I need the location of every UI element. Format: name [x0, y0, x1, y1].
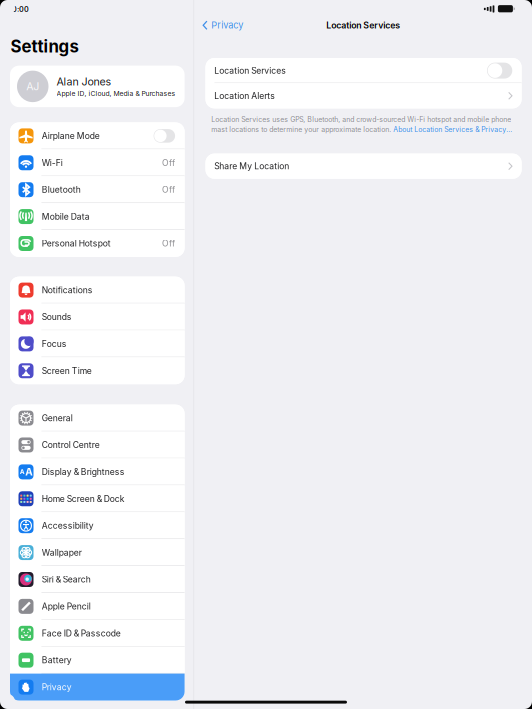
staticText: Bluetooth — [42, 184, 81, 195]
button[interactable]: Accessibility — [10, 512, 185, 539]
staticText: A — [25, 466, 32, 478]
button[interactable]: Screen Time — [10, 357, 185, 384]
staticText: Privacy — [42, 682, 72, 692]
button[interactable]: Focus — [10, 330, 185, 357]
button[interactable]: Wi-Fi — [10, 149, 185, 176]
staticText: Off — [162, 184, 175, 195]
staticText: A — [20, 468, 25, 476]
staticText: Wallpaper — [42, 547, 82, 558]
staticText: Sounds — [42, 312, 72, 322]
button[interactable]: Wallpaper — [10, 539, 185, 566]
staticText: Share My Location — [214, 161, 289, 171]
button[interactable]: Airplane Mode — [10, 122, 185, 149]
button[interactable]: AJ — [10, 66, 185, 107]
staticText: Focus — [42, 339, 67, 349]
staticText: Apple ID, iCloud, Media & Purchases — [56, 89, 175, 98]
button[interactable]: Location Alerts — [205, 83, 522, 108]
button[interactable]: Mobile Data — [10, 203, 185, 230]
staticText: AJ — [26, 80, 39, 93]
button[interactable]: Personal Hotspot — [10, 230, 185, 257]
staticText: Screen Time — [42, 366, 92, 376]
staticText: Privacy — [211, 20, 243, 31]
staticText: Location Alerts — [214, 91, 275, 101]
staticText: Notifications — [42, 285, 93, 295]
staticText: General — [42, 413, 73, 423]
staticText: Alan Jones — [56, 75, 111, 88]
staticText: Control Centre — [42, 440, 100, 450]
staticText: Home Screen & Dock — [42, 494, 125, 504]
button[interactable]: Home Screen & Dock — [10, 485, 185, 512]
button[interactable]: Apple Pencil — [10, 593, 185, 620]
staticText: Location Services — [326, 20, 400, 30]
button[interactable]: Bluetooth — [10, 176, 185, 203]
staticText: Display & Brightness — [42, 467, 125, 477]
button[interactable]: Sounds — [10, 303, 185, 330]
staticText: Settings — [11, 36, 79, 57]
staticText: Apple Pencil — [42, 601, 91, 611]
staticText: Siri & Search — [42, 574, 91, 585]
staticText: mast locations to determine your approxi… — [211, 125, 393, 134]
button[interactable]: A — [10, 458, 185, 485]
staticText: Mobile Data — [42, 211, 90, 222]
staticText: Off — [162, 238, 175, 249]
button[interactable]: Privacy — [10, 674, 185, 700]
staticText: Accessibility — [42, 520, 94, 531]
staticText: 10:00 — [9, 5, 29, 14]
button[interactable]: Control Centre — [10, 431, 185, 458]
staticText: Location Services — [214, 65, 286, 76]
staticText: Off — [162, 158, 175, 168]
staticText: Airplane Mode — [42, 131, 100, 141]
button[interactable]: Share My Location — [205, 154, 522, 179]
staticText: Battery — [42, 655, 72, 665]
staticText: Wi-Fi — [42, 158, 63, 168]
button[interactable]: Face ID & Passcode — [10, 620, 185, 647]
button[interactable]: Privacy — [202, 20, 243, 31]
button[interactable]: Notifications — [10, 277, 185, 303]
button[interactable]: Location Services — [205, 58, 522, 83]
staticText: Location Services uses GPS, Bluetooth, a… — [211, 115, 511, 124]
staticText: Personal Hotspot — [42, 238, 111, 249]
button[interactable]: Battery — [10, 647, 185, 674]
staticText: Face ID & Passcode — [42, 628, 121, 638]
staticText: About Location Services & Privacy... — [393, 125, 512, 134]
button[interactable]: General — [10, 405, 185, 431]
button[interactable]: Siri & Search — [10, 566, 185, 593]
